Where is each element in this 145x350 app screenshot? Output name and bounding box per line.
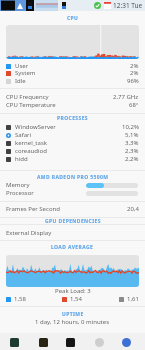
button[interactable]: App	[95, 338, 104, 347]
button[interactable]: Editor	[39, 338, 48, 347]
staticText: Peak Load: 3	[55, 287, 91, 295]
staticText: coreaudiod	[15, 147, 47, 155]
staticText: 1,58	[14, 295, 26, 303]
button[interactable]: kernel_task	[6, 138, 139, 148]
staticText: 20,4	[127, 205, 139, 213]
staticText: hidd	[15, 155, 28, 163]
staticText: CPU Temperature	[6, 101, 56, 109]
other: Calendar	[104, 2, 111, 9]
staticText: Frames Per Second	[6, 205, 60, 213]
staticText: kernel_task	[15, 139, 47, 147]
staticText: System	[15, 69, 36, 77]
staticText: UPTIME	[62, 311, 84, 318]
staticText: 10,2%	[122, 123, 139, 131]
staticText: Memory	[6, 181, 30, 189]
staticText: 3,3%	[125, 139, 139, 147]
button[interactable]: Safari	[6, 130, 139, 140]
staticText: 2%	[130, 69, 139, 77]
staticText: User	[15, 62, 29, 70]
staticText: 2,3%	[125, 147, 139, 155]
button[interactable]: hidd	[6, 154, 139, 164]
staticText: 2,2%	[125, 155, 139, 163]
staticText: 1 day, 12 hours, 0 minutes	[35, 318, 110, 326]
staticText: AMD RADEON PRO 5500M	[37, 174, 109, 181]
button[interactable]: WindowServer	[6, 122, 139, 132]
staticText: 96%	[127, 77, 139, 85]
staticText: Idle	[15, 77, 26, 85]
staticText: 12:31 Tue	[113, 1, 143, 10]
button[interactable]: Terminal	[10, 338, 19, 347]
staticText: 1,54	[70, 295, 82, 303]
staticText: PROCESSES	[57, 115, 89, 122]
staticText: 2,77 GHz	[113, 93, 139, 101]
button[interactable]: Console	[66, 338, 75, 347]
staticText: CPU	[67, 15, 79, 22]
staticText: GPU DEPENDENCIES	[45, 218, 101, 225]
staticText: LOAD AVERAGE	[51, 244, 94, 251]
staticText: 68°	[129, 101, 139, 109]
other: Status	[94, 2, 101, 9]
button[interactable]: coreaudiod	[6, 146, 139, 156]
staticText: CPU Frequency	[6, 93, 49, 101]
staticText: 1,61	[127, 295, 139, 303]
staticText: Safari	[15, 131, 32, 139]
staticText: 5,1%	[125, 131, 139, 139]
staticText: WindowServer	[15, 123, 56, 131]
staticText: External Display	[6, 229, 52, 237]
staticText: Processor	[6, 189, 34, 197]
staticText: 2%	[130, 62, 139, 70]
button[interactable]: Safari	[122, 338, 131, 347]
